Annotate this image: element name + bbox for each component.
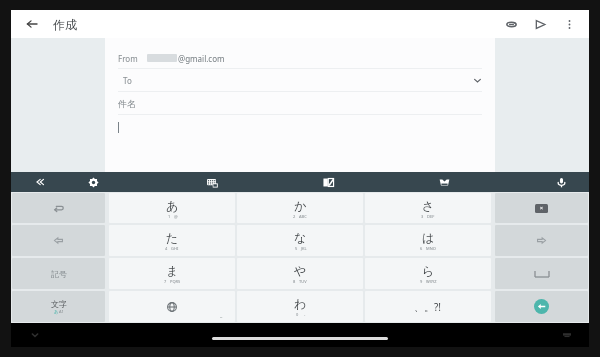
button[interactable]: _ bbox=[109, 291, 235, 322]
staticText: 8 bbox=[293, 279, 296, 284]
button[interactable]: 件名 bbox=[118, 92, 482, 114]
button[interactable]: Switch keyboard bbox=[561, 329, 573, 341]
staticText: た bbox=[166, 230, 179, 245]
staticText: 7 bbox=[164, 279, 167, 284]
staticText: 記号 bbox=[51, 269, 67, 279]
staticText: か bbox=[294, 198, 307, 213]
button[interactable]: わ bbox=[237, 291, 363, 322]
button[interactable]: Handwriting bbox=[302, 172, 354, 192]
button[interactable] bbox=[495, 225, 588, 256]
button[interactable]: Settings bbox=[66, 172, 121, 192]
button[interactable]: Keyboard layout bbox=[186, 172, 238, 192]
button[interactable]: × bbox=[495, 193, 588, 223]
button[interactable]: か bbox=[237, 193, 363, 223]
button[interactable]: ま bbox=[109, 258, 235, 289]
staticText: To bbox=[123, 75, 132, 86]
button[interactable]: た bbox=[109, 225, 235, 256]
staticText: あ bbox=[54, 309, 59, 314]
button[interactable]: To bbox=[118, 69, 482, 91]
staticText: 6 bbox=[420, 246, 423, 251]
button[interactable]: Hide keyboard bbox=[29, 329, 41, 341]
staticText: @ bbox=[174, 214, 178, 219]
button[interactable]: は bbox=[365, 225, 491, 256]
staticText: TUV bbox=[299, 279, 307, 284]
staticText: MNO bbox=[426, 246, 436, 251]
button[interactable]: Back bbox=[21, 13, 43, 35]
button[interactable]: さ bbox=[365, 193, 491, 223]
staticText: な bbox=[294, 230, 307, 245]
button[interactable]: あ bbox=[109, 193, 235, 223]
staticText: 4 bbox=[165, 246, 168, 251]
button[interactable] bbox=[12, 225, 105, 256]
button[interactable]: More options bbox=[559, 14, 579, 34]
button[interactable] bbox=[118, 115, 482, 139]
staticText: A1 bbox=[59, 309, 64, 314]
staticText: 件名 bbox=[118, 98, 136, 109]
staticText: DEF bbox=[427, 214, 435, 219]
staticText: ら bbox=[422, 263, 435, 278]
staticText: @gmail.com bbox=[178, 53, 225, 64]
staticText: GHI bbox=[171, 246, 179, 251]
staticText: 9 bbox=[420, 279, 423, 284]
staticText: From bbox=[118, 53, 138, 64]
button[interactable]: Attach file bbox=[501, 14, 521, 34]
button[interactable] bbox=[495, 258, 588, 289]
button[interactable] bbox=[495, 291, 588, 322]
button[interactable]: 、。?! bbox=[365, 291, 491, 322]
button[interactable]: From bbox=[118, 48, 482, 68]
staticText: × bbox=[540, 205, 543, 212]
button[interactable] bbox=[12, 193, 105, 223]
staticText: ABC bbox=[299, 214, 307, 219]
staticText: や bbox=[294, 263, 307, 278]
staticText: 1 bbox=[168, 214, 171, 219]
button[interactable]: ら bbox=[365, 258, 491, 289]
button[interactable]: Emoji bbox=[418, 172, 470, 192]
staticText: 、。?! bbox=[414, 300, 442, 314]
button[interactable]: Voice input bbox=[534, 172, 589, 192]
staticText: 0 bbox=[296, 312, 299, 317]
staticText: PQRS bbox=[170, 279, 181, 284]
staticText: - bbox=[304, 312, 306, 317]
staticText: _ bbox=[220, 312, 223, 319]
button[interactable]: Collapse bbox=[11, 172, 66, 192]
staticText: WXYZ bbox=[426, 279, 437, 284]
button[interactable]: Home bbox=[212, 337, 388, 340]
staticText: 5 bbox=[295, 246, 298, 251]
button[interactable]: 文字 bbox=[12, 291, 105, 322]
staticText: 文字 bbox=[51, 299, 67, 309]
button[interactable]: 記号 bbox=[12, 258, 105, 289]
button[interactable]: な bbox=[237, 225, 363, 256]
button[interactable]: Send bbox=[530, 14, 550, 34]
staticText: は bbox=[422, 230, 435, 245]
staticText: あ bbox=[166, 198, 179, 213]
staticText: 2 bbox=[293, 214, 296, 219]
staticText: JKL bbox=[301, 246, 307, 251]
button[interactable]: や bbox=[237, 258, 363, 289]
staticText: わ bbox=[294, 296, 307, 311]
staticText: さ bbox=[422, 198, 435, 213]
staticText: 作成 bbox=[53, 17, 77, 32]
staticText: ま bbox=[166, 263, 179, 278]
staticText: 3 bbox=[421, 214, 424, 219]
